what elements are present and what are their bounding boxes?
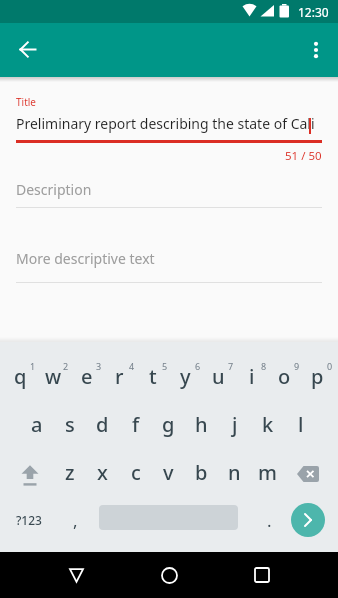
button[interactable]: m xyxy=(251,448,284,496)
staticText: . xyxy=(267,509,272,532)
staticText: x xyxy=(97,459,108,486)
staticText: w xyxy=(45,363,62,390)
button[interactable]: v xyxy=(152,448,185,496)
button[interactable]: k xyxy=(251,400,284,448)
button[interactable]: More descriptive text xyxy=(16,247,322,269)
button[interactable]: s xyxy=(53,400,86,448)
button[interactable]: x xyxy=(86,448,119,496)
staticText: e xyxy=(81,363,93,390)
staticText: t xyxy=(149,363,157,390)
button[interactable]: p xyxy=(301,352,334,400)
staticText: u xyxy=(212,363,225,390)
staticText: 8 xyxy=(261,360,267,372)
staticText: z xyxy=(65,459,75,486)
button[interactable] xyxy=(302,36,330,64)
staticText: f xyxy=(132,411,140,438)
staticText: j xyxy=(232,411,238,438)
staticText: v xyxy=(163,459,174,486)
staticText: r xyxy=(115,363,124,390)
button[interactable]: z xyxy=(53,448,86,496)
staticText: 5 xyxy=(162,360,168,372)
staticText: 51 / 50 xyxy=(285,148,322,164)
button[interactable]: l xyxy=(284,400,317,448)
button[interactable]: j xyxy=(218,400,251,448)
button[interactable]: f xyxy=(119,400,152,448)
staticText: h xyxy=(195,411,208,438)
button[interactable]: r xyxy=(103,352,136,400)
button[interactable]: g xyxy=(152,400,185,448)
staticText: i xyxy=(249,363,255,390)
button[interactable]: Description xyxy=(16,178,322,200)
button[interactable]: c xyxy=(119,448,152,496)
button[interactable] xyxy=(288,448,328,496)
staticText: 0 xyxy=(327,360,333,372)
button[interactable]: o xyxy=(268,352,301,400)
button[interactable] xyxy=(242,555,282,595)
button[interactable]: y xyxy=(169,352,202,400)
button[interactable]: i xyxy=(235,352,268,400)
button[interactable]: t xyxy=(136,352,169,400)
staticText: s xyxy=(65,411,75,438)
button[interactable]: u xyxy=(202,352,235,400)
button[interactable]: d xyxy=(86,400,119,448)
staticText: 2 xyxy=(63,360,69,372)
staticText: y xyxy=(180,363,191,390)
button[interactable] xyxy=(10,448,50,496)
button[interactable]: Preliminary report describing the state … xyxy=(16,112,316,134)
button[interactable]: w xyxy=(37,352,70,400)
staticText: l xyxy=(298,411,304,438)
staticText: 4 xyxy=(129,360,135,372)
button[interactable]: h xyxy=(185,400,218,448)
staticText: 1 xyxy=(30,360,36,372)
button[interactable]: e xyxy=(70,352,103,400)
staticText: 7 xyxy=(228,360,234,372)
staticText: Preliminary report describing the state … xyxy=(16,114,315,133)
staticText: b xyxy=(195,459,208,486)
staticText: m xyxy=(258,459,277,486)
staticText: o xyxy=(278,363,291,390)
staticText: k xyxy=(262,411,274,438)
staticText: 3 xyxy=(96,360,102,372)
staticText: c xyxy=(131,459,141,486)
staticText: a xyxy=(31,411,43,438)
staticText: n xyxy=(228,459,241,486)
staticText: , xyxy=(73,509,78,532)
staticText: p xyxy=(311,363,324,390)
staticText: More descriptive text xyxy=(16,249,155,268)
button[interactable] xyxy=(56,555,96,595)
staticText: Title xyxy=(16,95,36,108)
button[interactable] xyxy=(291,503,325,537)
staticText: d xyxy=(96,411,109,438)
staticText: Description xyxy=(16,180,92,199)
staticText: 6 xyxy=(195,360,201,372)
button[interactable]: a xyxy=(20,400,53,448)
button[interactable]: , xyxy=(60,496,90,544)
staticText: q xyxy=(14,363,27,390)
button[interactable]: b xyxy=(185,448,218,496)
button[interactable]: q xyxy=(4,352,37,400)
button[interactable]: n xyxy=(218,448,251,496)
button[interactable]: . xyxy=(254,496,284,544)
staticText: ?123 xyxy=(16,512,42,528)
staticText: g xyxy=(162,411,175,438)
staticText: 12:30 xyxy=(298,4,329,20)
button[interactable] xyxy=(149,555,189,595)
staticText: 9 xyxy=(294,360,300,372)
button[interactable] xyxy=(13,35,43,65)
button[interactable]: ?123 xyxy=(8,496,50,544)
